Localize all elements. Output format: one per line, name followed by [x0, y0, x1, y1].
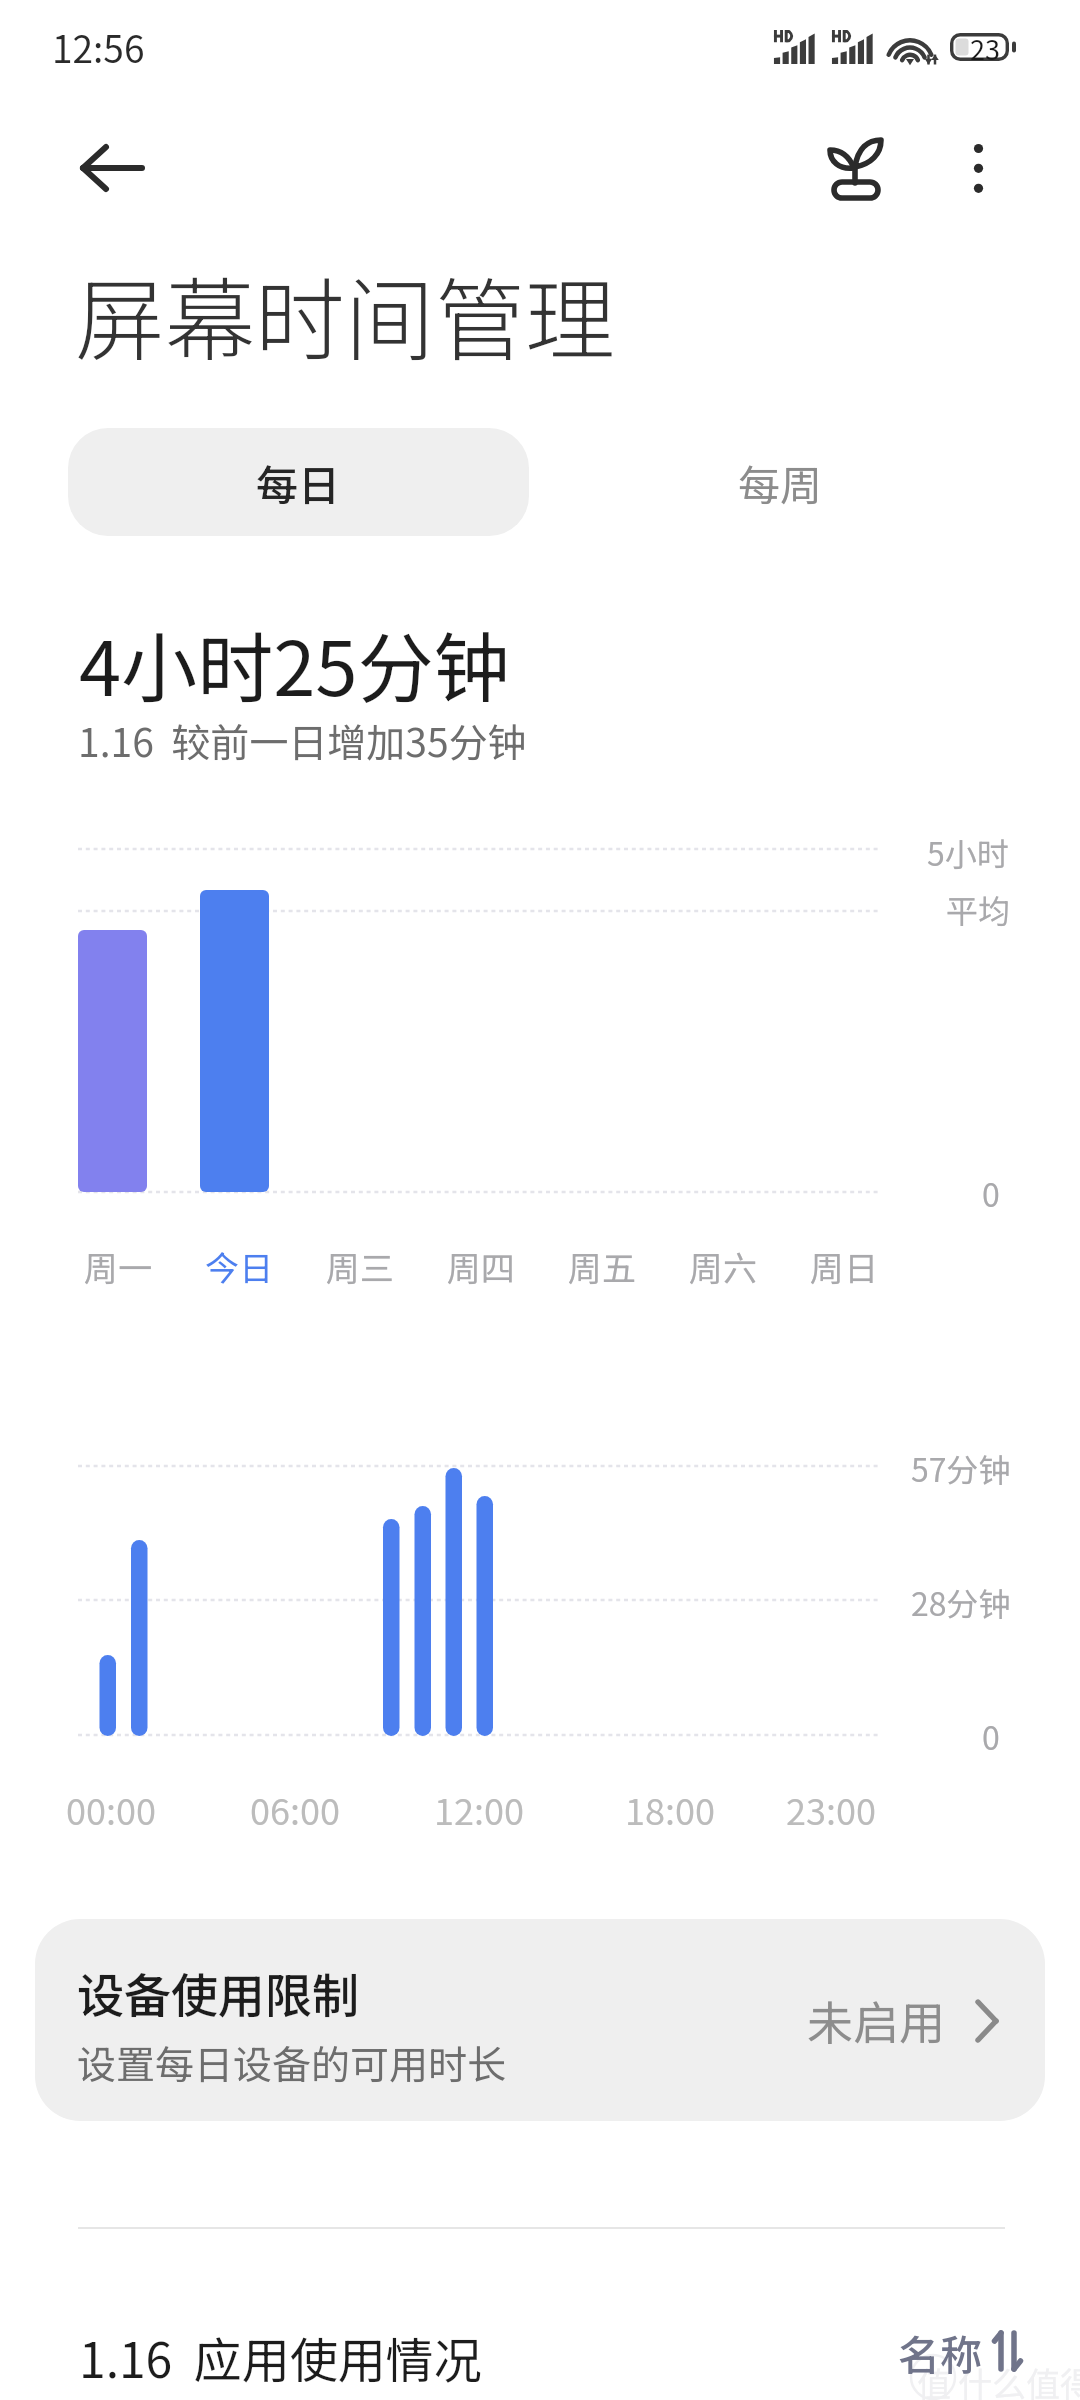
staticText: 值	[917, 2358, 951, 2400]
button[interactable]: 周三	[299, 1238, 420, 1294]
staticText: 23	[970, 29, 1000, 68]
staticText: 周三	[326, 1242, 394, 1291]
staticText: 18:00	[625, 1783, 715, 1835]
button[interactable]: 每周	[550, 428, 1011, 536]
staticText: 12:00	[434, 1783, 524, 1835]
staticText: 设置每日设备的可用时长	[77, 2034, 507, 2090]
staticText: 4小时25分钟	[79, 608, 510, 718]
button[interactable]: 周六	[662, 1238, 783, 1294]
staticText: 0	[982, 1170, 1000, 1216]
staticText: 57分钟	[911, 1445, 1011, 1491]
staticText: 屏幕时间管理	[75, 249, 615, 379]
button[interactable]: 周一	[57, 1238, 178, 1294]
button[interactable]: 今日	[178, 1238, 299, 1294]
button[interactable]: 名称	[898, 2322, 1023, 2383]
staticText: 名称	[898, 2322, 983, 2383]
button[interactable]: Hourly usage chart	[78, 1440, 880, 1740]
staticText: 周日	[810, 1242, 878, 1291]
staticText: 06:00	[250, 1783, 340, 1835]
staticText: 什么值得买	[958, 2358, 1080, 2400]
staticText: 周五	[568, 1242, 636, 1291]
staticText: 1.16 应用使用情况	[79, 2322, 482, 2392]
button[interactable]: 周四	[420, 1238, 541, 1294]
staticText: 今日	[205, 1242, 273, 1291]
staticText: 12:56	[52, 20, 145, 74]
staticText: 设备使用限制	[77, 1958, 359, 2026]
staticText: 平均	[946, 886, 1011, 932]
staticText: 每日	[256, 452, 341, 513]
staticText: 每周	[738, 452, 823, 513]
staticText: 周一	[84, 1242, 152, 1291]
staticText: 28分钟	[911, 1579, 1011, 1625]
staticText: 周六	[689, 1242, 757, 1291]
button[interactable]: More options	[925, 113, 1035, 223]
button[interactable]: 周五	[541, 1238, 662, 1294]
button[interactable]: 设备使用限制	[35, 1919, 1045, 2121]
button[interactable]: Back	[57, 113, 167, 223]
staticText: 23:00	[786, 1783, 876, 1835]
staticText: 0	[982, 1713, 1000, 1759]
button[interactable]: 每日	[68, 428, 529, 536]
staticText: 周四	[447, 1242, 515, 1291]
staticText: 5小时	[927, 829, 1009, 875]
staticText: 未启用	[807, 1987, 945, 2054]
staticText: 00:00	[66, 1783, 156, 1835]
button[interactable]: Focus mode	[801, 113, 911, 223]
button[interactable]: 周日	[783, 1238, 904, 1294]
staticText: 1.16 较前一日增加35分钟	[78, 712, 527, 768]
